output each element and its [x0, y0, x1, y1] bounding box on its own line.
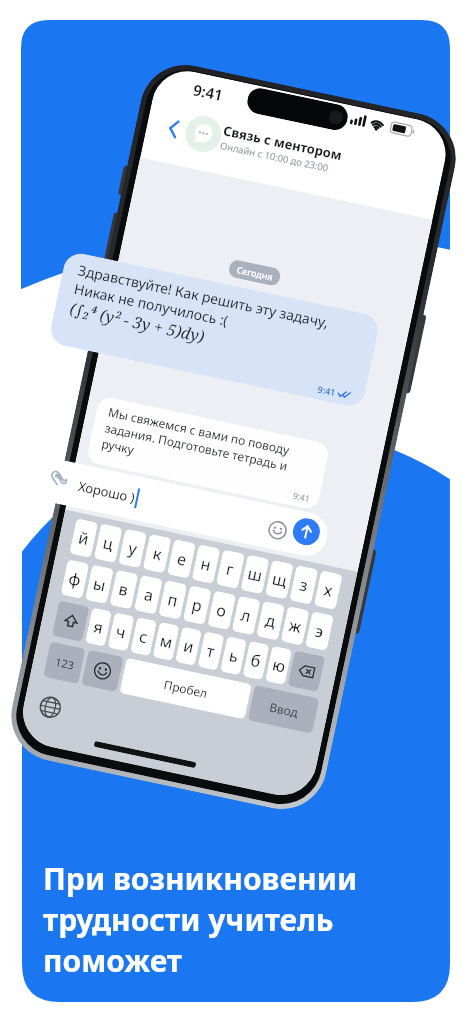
- button[interactable]: г: [216, 549, 245, 589]
- staticText: ы: [91, 572, 109, 596]
- staticText: ф: [67, 567, 83, 591]
- staticText: 9:41: [191, 79, 225, 105]
- staticText: Мы свяжемся с вами по поводу: [107, 404, 291, 458]
- button[interactable]: и: [175, 626, 202, 666]
- staticText: 9:41: [317, 383, 337, 398]
- staticText: э: [313, 619, 326, 643]
- staticText: Пробел: [162, 676, 210, 701]
- staticText: л: [239, 604, 253, 627]
- staticText: у: [126, 537, 140, 560]
- button[interactable]: т: [197, 631, 224, 671]
- staticText: щ: [270, 567, 289, 592]
- button[interactable]: е: [167, 539, 196, 579]
- button[interactable]: [52, 600, 89, 642]
- button[interactable]: б: [242, 641, 269, 680]
- staticText: Сегодня: [236, 263, 274, 283]
- button[interactable]: 123: [43, 641, 86, 684]
- staticText: задания. Подготовьте тетрадь и: [104, 419, 290, 474]
- staticText: При возникновении: [43, 858, 358, 899]
- button[interactable]: [290, 516, 322, 548]
- button[interactable]: ш: [240, 555, 269, 594]
- button[interactable]: Пробел: [119, 658, 252, 719]
- staticText: х: [322, 578, 335, 602]
- staticText: к: [151, 542, 164, 565]
- button[interactable]: ч: [107, 612, 134, 652]
- staticText: я: [91, 615, 106, 639]
- staticText: 9:41: [292, 490, 311, 505]
- button[interactable]: к: [143, 534, 172, 574]
- button[interactable]: д: [256, 601, 285, 641]
- staticText: ч: [114, 620, 128, 644]
- staticText: м: [158, 629, 175, 654]
- button[interactable]: р: [183, 585, 212, 625]
- button[interactable]: ы: [85, 564, 114, 604]
- staticText: трудности учитель: [43, 899, 334, 940]
- staticText: и: [181, 634, 196, 658]
- staticText: с: [137, 625, 150, 648]
- staticText: т: [205, 639, 217, 663]
- staticText: ц: [101, 531, 115, 555]
- staticText: ю: [270, 653, 288, 677]
- button[interactable]: щ: [265, 560, 294, 600]
- staticText: д: [263, 609, 278, 632]
- staticText: а: [142, 583, 155, 607]
- button[interactable]: Связь с ментором: [219, 121, 344, 177]
- staticText: з: [298, 573, 310, 596]
- staticText: в: [117, 578, 131, 601]
- button[interactable]: [37, 694, 64, 721]
- button[interactable]: [81, 649, 124, 692]
- staticText: н: [199, 552, 213, 576]
- staticText: Хорошо ): [77, 477, 137, 507]
- staticText: е: [175, 547, 189, 571]
- button[interactable]: [287, 650, 325, 692]
- staticText: Ввод: [268, 699, 300, 720]
- button[interactable]: Ввод: [247, 685, 319, 734]
- staticText: р: [190, 593, 204, 617]
- button[interactable]: л: [232, 596, 261, 635]
- button[interactable]: Хорошо ): [37, 456, 331, 560]
- button[interactable]: ь: [220, 636, 247, 675]
- button[interactable]: й: [69, 518, 98, 558]
- button[interactable]: [266, 518, 289, 542]
- staticText: Никак не получилось :(: [72, 279, 230, 330]
- staticText: (∫₂⁴ (y² − 3y + 5)dy): [68, 297, 206, 347]
- staticText: Онлайн с 10:00 до 23:00: [219, 139, 330, 175]
- staticText: ж: [287, 614, 304, 638]
- staticText: п: [166, 588, 180, 612]
- button[interactable]: ц: [94, 523, 123, 563]
- button[interactable]: м: [152, 622, 179, 661]
- staticText: Здравствуйте! Как решить эту задачу,: [76, 260, 331, 332]
- button[interactable]: з: [289, 565, 318, 605]
- staticText: Связь с ментором: [222, 121, 344, 164]
- staticText: 123: [54, 654, 76, 673]
- button[interactable]: п: [158, 580, 187, 620]
- staticText: й: [76, 526, 91, 550]
- staticText: б: [249, 649, 263, 672]
- button[interactable]: н: [191, 544, 220, 584]
- button[interactable]: ф: [60, 559, 89, 599]
- button[interactable]: в: [109, 570, 138, 609]
- staticText: ручку: [100, 435, 136, 457]
- staticText: г: [224, 558, 237, 581]
- staticText: ь: [227, 644, 241, 668]
- button[interactable]: э: [305, 611, 334, 651]
- staticText: поможет: [43, 940, 183, 981]
- button[interactable]: ж: [281, 606, 310, 646]
- staticText: ш: [246, 562, 265, 587]
- button[interactable]: [166, 118, 182, 140]
- button[interactable]: х: [314, 570, 343, 610]
- button[interactable]: о: [207, 590, 236, 630]
- button[interactable]: я: [85, 607, 112, 647]
- staticText: о: [214, 598, 229, 622]
- button[interactable]: с: [130, 617, 157, 656]
- button[interactable]: ю: [265, 646, 292, 685]
- button[interactable]: а: [134, 575, 163, 615]
- button[interactable]: у: [118, 529, 147, 568]
